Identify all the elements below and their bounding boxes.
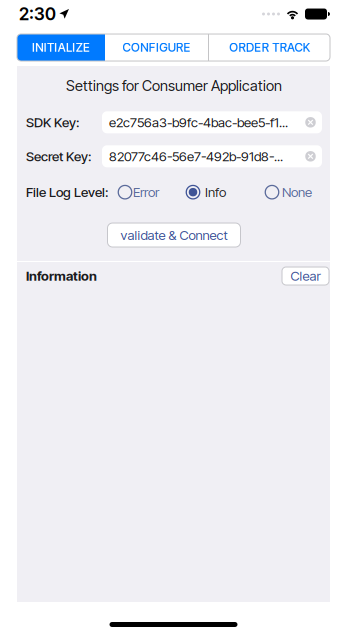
staticText: 82077c46-56e7-492b-91d8-... — [109, 148, 283, 164]
staticText: Information — [26, 268, 97, 284]
staticText: Error — [133, 184, 159, 200]
staticText: SDK Key: — [26, 114, 79, 130]
button[interactable]: 82077c46-56e7-492b-91d8-... — [102, 145, 322, 167]
staticText: ORDER TRACK — [229, 40, 310, 55]
button[interactable]: CONFIGURE — [105, 34, 208, 61]
staticText: Info — [205, 184, 226, 200]
staticText: e2c756a3-b9fc-4bac-bee5-f1... — [109, 114, 288, 130]
button[interactable]: e2c756a3-b9fc-4bac-bee5-f1... — [102, 111, 322, 133]
staticText: CONFIGURE — [123, 40, 190, 55]
staticText: INITIALIZE — [32, 40, 90, 55]
button[interactable]: INITIALIZE — [17, 34, 105, 61]
button[interactable]: ORDER TRACK — [209, 34, 330, 61]
staticText: 2:30 — [19, 4, 56, 24]
staticText: Settings for Consumer Application — [66, 77, 282, 94]
staticText: None — [282, 184, 312, 200]
staticText: File Log Level: — [26, 184, 108, 200]
button[interactable]: Info — [186, 184, 226, 200]
staticText: Clear — [290, 268, 320, 284]
button[interactable]: Clear — [282, 267, 329, 285]
button[interactable]: None — [265, 184, 312, 200]
staticText: Secret Key: — [26, 148, 91, 164]
staticText: validate & Connect — [120, 227, 227, 243]
button[interactable]: validate & Connect — [107, 223, 240, 247]
button[interactable]: Error — [118, 184, 159, 200]
